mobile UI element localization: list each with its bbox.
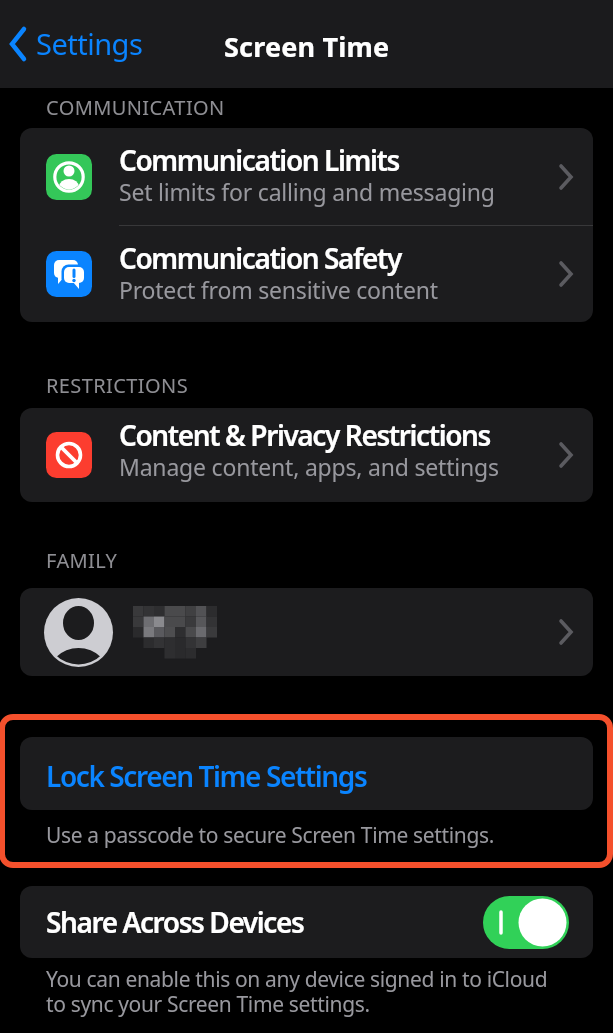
- staticText: Communication Safety: [119, 239, 401, 277]
- staticText: Lock Screen Time Settings: [46, 757, 367, 795]
- staticText: You can enable this on any device signed…: [46, 965, 548, 1018]
- button[interactable]: [483, 896, 569, 949]
- staticText: Communication Limits: [119, 141, 399, 179]
- staticText: Set limits for calling and messaging: [119, 176, 495, 207]
- button[interactable]: Communication Safety: [20, 226, 593, 322]
- button[interactable]: Lock Screen Time Settings: [20, 737, 593, 810]
- button[interactable]: Communication Limits: [20, 128, 593, 225]
- staticText: Protect from sensitive content: [119, 274, 438, 305]
- staticText: RESTRICTIONS: [46, 372, 189, 399]
- staticText: Share Across Devices: [46, 903, 304, 941]
- staticText: Screen Time: [224, 28, 390, 65]
- staticText: Use a passcode to secure Screen Time set…: [46, 821, 495, 850]
- staticText: Settings: [36, 24, 143, 63]
- staticText: Content & Privacy Restrictions: [119, 416, 490, 454]
- button[interactable]: [20, 588, 593, 676]
- button[interactable]: Settings: [8, 24, 143, 63]
- staticText: FAMILY: [46, 547, 118, 574]
- staticText: Manage content, apps, and settings: [119, 451, 499, 482]
- staticText: COMMUNICATION: [46, 94, 225, 121]
- button[interactable]: Content & Privacy Restrictions: [20, 408, 593, 502]
